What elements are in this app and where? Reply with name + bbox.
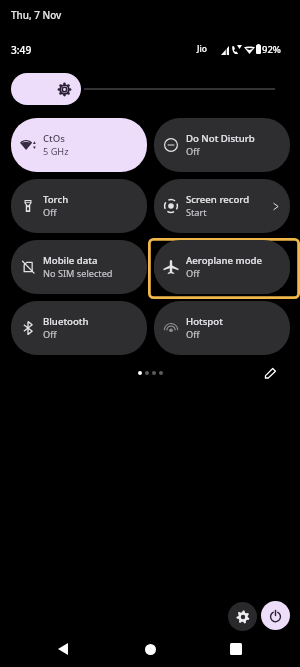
button[interactable]: Screen record: [154, 179, 290, 233]
staticText: CtOs: [43, 132, 65, 145]
staticText: 5 GHz: [43, 145, 69, 158]
button[interactable]: CtOs: [11, 118, 147, 172]
staticText: Off: [186, 267, 200, 280]
staticText: Jio: [197, 43, 207, 55]
staticText: Torch: [43, 193, 69, 206]
staticText: Aeroplane mode: [186, 254, 262, 267]
button[interactable]: Mobile data: [11, 240, 147, 294]
staticText: Start: [186, 206, 207, 219]
staticText: Off: [43, 328, 57, 341]
staticText: Thu, 7 Nov: [11, 8, 62, 21]
staticText: 3:49: [11, 43, 32, 57]
staticText: Off: [186, 267, 200, 280]
button[interactable]: Bluetooth: [11, 301, 147, 355]
staticText: Mobile data: [43, 254, 98, 267]
button[interactable]: Hotspot: [154, 301, 290, 355]
staticText: Off: [186, 145, 200, 158]
button[interactable]: Aeroplane mode: [154, 240, 290, 294]
staticText: Off: [43, 206, 57, 219]
button[interactable]: Brightness: [11, 73, 81, 105]
button[interactable]: Edit tiles: [262, 364, 279, 380]
staticText: 92%: [262, 43, 281, 56]
button[interactable]: Power: [261, 601, 290, 630]
button[interactable]: Aeroplane mode: [154, 240, 290, 294]
button[interactable]: Home: [117, 631, 183, 667]
button[interactable]: Torch: [11, 179, 147, 233]
staticText: Do Not Disturb: [186, 132, 255, 145]
staticText: Hotspot: [186, 315, 223, 328]
staticText: Off: [186, 328, 200, 341]
staticText: Screen record: [186, 193, 250, 206]
button[interactable]: Back: [30, 631, 96, 667]
staticText: No SIM selected: [43, 267, 113, 280]
button[interactable]: Do Not Disturb: [154, 118, 290, 172]
staticText: Aeroplane mode: [186, 254, 262, 267]
button[interactable]: Settings: [228, 602, 257, 631]
button[interactable]: Recents: [203, 631, 269, 667]
staticText: Bluetooth: [43, 315, 89, 328]
